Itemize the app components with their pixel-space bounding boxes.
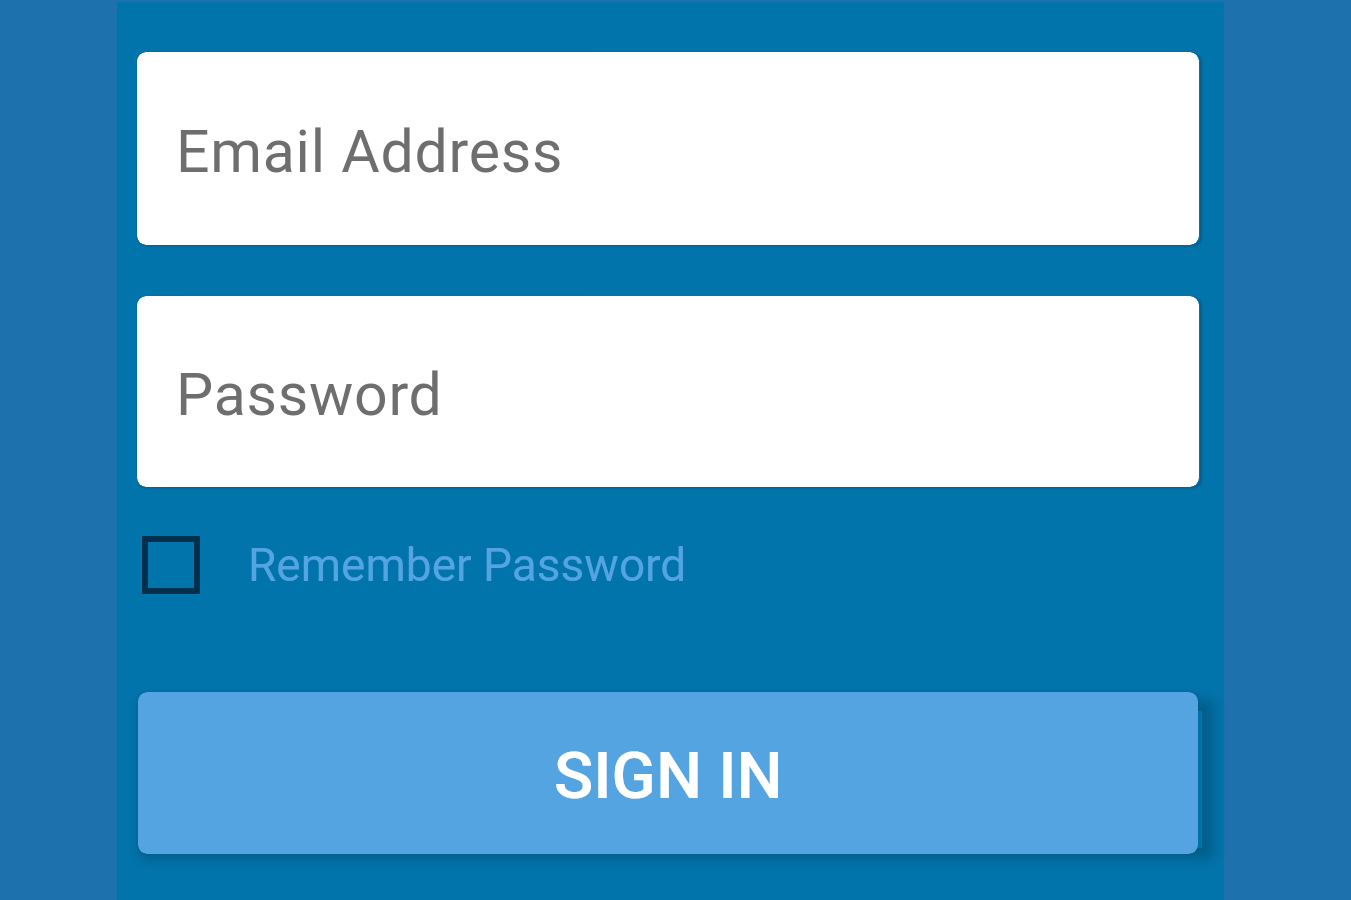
staticText: Email Address — [176, 117, 564, 186]
button[interactable]: SIGN IN — [138, 692, 1198, 854]
button[interactable]: Password — [137, 296, 1199, 487]
button[interactable]: Email Address — [137, 52, 1199, 245]
staticText: Password — [176, 360, 443, 429]
other: Remember password checkbox — [142, 536, 200, 594]
staticText: SIGN IN — [554, 738, 783, 814]
staticText: Remember Password — [248, 538, 687, 592]
button[interactable]: Remember password checkbox — [142, 535, 687, 595]
